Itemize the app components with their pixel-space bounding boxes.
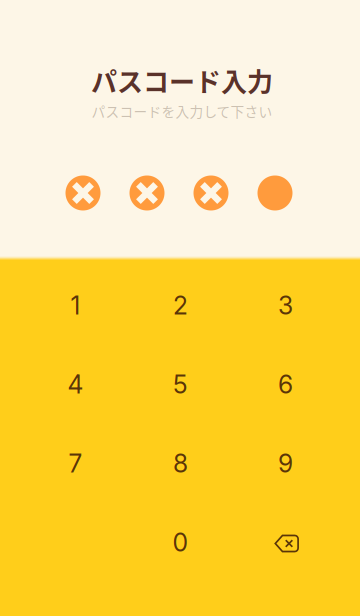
button[interactable]: 8 [128, 424, 233, 503]
button[interactable]: 4 [23, 345, 128, 424]
staticText: 8 [173, 448, 188, 478]
staticText: 9 [278, 448, 293, 478]
staticText: 6 [278, 369, 293, 399]
button[interactable]: 7 [23, 424, 128, 503]
staticText: 2 [173, 290, 188, 320]
staticText: 3 [278, 290, 293, 320]
staticText: 5 [173, 369, 188, 399]
button[interactable]: Delete [233, 503, 338, 582]
button[interactable]: 6 [233, 345, 338, 424]
staticText: パスコード入力 [91, 62, 273, 99]
button[interactable]: 2 [128, 266, 233, 345]
staticText: 1 [70, 290, 80, 320]
button[interactable]: 3 [233, 266, 338, 345]
button[interactable]: 0 [128, 503, 233, 582]
button[interactable]: 5 [128, 345, 233, 424]
staticText: 0 [172, 527, 188, 557]
button[interactable]: 1 [23, 266, 128, 345]
staticText: 7 [68, 448, 82, 478]
staticText: パスコードを入力して下さい [91, 101, 272, 121]
button[interactable]: 9 [233, 424, 338, 503]
staticText: 4 [67, 369, 83, 399]
